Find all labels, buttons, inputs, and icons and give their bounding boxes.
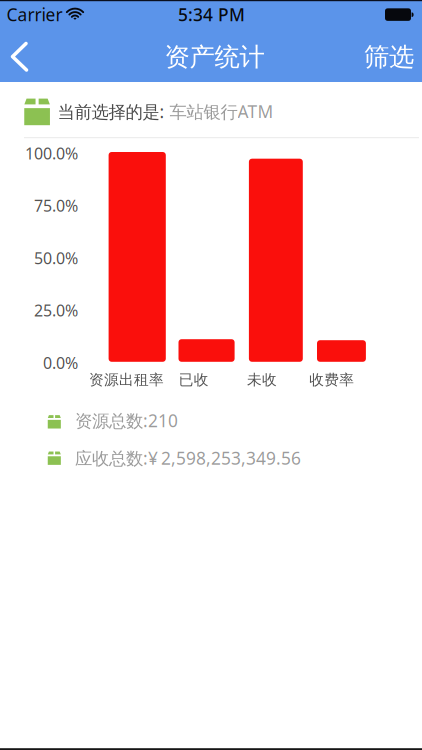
- staticText: 资源总数:210: [75, 409, 178, 432]
- staticText: 100.0%: [25, 143, 78, 164]
- staticText: 5:34 PM: [178, 3, 245, 26]
- staticText: 0.0%: [43, 352, 78, 373]
- staticText: 车站银行ATM: [169, 100, 273, 123]
- staticText: 已收: [179, 371, 209, 389]
- staticText: Carrier: [6, 3, 62, 26]
- staticText: 应收总数:¥ 2,598,253,349.56: [75, 446, 301, 469]
- staticText: 当前选择的是:: [57, 100, 164, 123]
- staticText: 50.0%: [34, 247, 78, 269]
- button[interactable]: Back: [0, 30, 44, 82]
- staticText: 75.0%: [34, 195, 78, 216]
- staticText: 资产统计: [164, 41, 264, 72]
- button[interactable]: 筛选: [358, 31, 420, 83]
- staticText: 筛选: [364, 41, 414, 72]
- staticText: 资源出租率: [89, 371, 164, 389]
- staticText: 25.0%: [34, 300, 78, 321]
- staticText: 未收: [247, 371, 277, 389]
- staticText: 收费率: [309, 371, 354, 389]
